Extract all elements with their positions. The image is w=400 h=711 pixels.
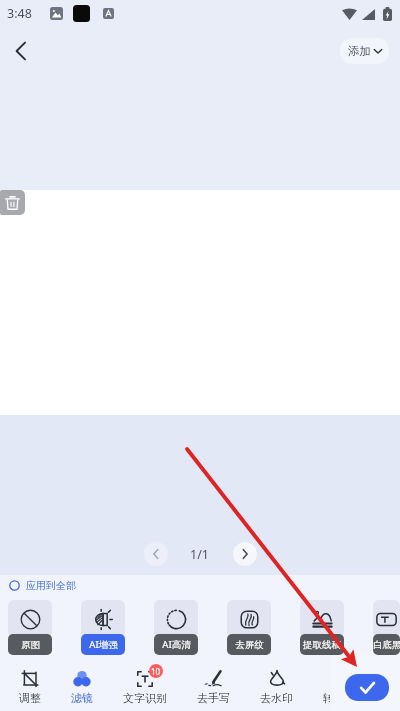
staticText: AI高清 bbox=[162, 638, 191, 651]
button[interactable]: 原图 bbox=[8, 600, 52, 655]
staticText: 提取线稿 bbox=[303, 639, 341, 651]
button[interactable]: 添加 bbox=[340, 38, 389, 64]
button[interactable]: Back bbox=[3, 33, 39, 69]
staticText: 调整 bbox=[19, 691, 41, 705]
button[interactable]: Next page bbox=[233, 542, 257, 566]
button[interactable]: 去屏纹 bbox=[227, 600, 271, 655]
button[interactable]: 白底黑字 bbox=[373, 600, 400, 655]
staticText: 应用到全部 bbox=[26, 579, 76, 592]
staticText: 白底黑字 bbox=[373, 639, 400, 651]
staticText: 去手写 bbox=[197, 691, 230, 705]
button[interactable]: 提取线稿 bbox=[300, 600, 344, 655]
staticText: 1/1 bbox=[190, 546, 209, 563]
button[interactable]: 应用到全部 bbox=[9, 575, 400, 596]
staticText: 去水印 bbox=[260, 691, 293, 705]
staticText: 3:48 bbox=[7, 5, 32, 22]
staticText: 10 bbox=[151, 666, 161, 677]
button[interactable]: Delete bbox=[0, 190, 25, 215]
button[interactable]: 滤镜 bbox=[71, 669, 93, 705]
button[interactable]: Previous page bbox=[144, 542, 168, 566]
staticText: 原图 bbox=[21, 639, 40, 651]
button[interactable]: Confirm bbox=[345, 674, 389, 701]
staticText: AI增强 bbox=[89, 638, 118, 651]
staticText: 添加 bbox=[348, 44, 371, 58]
button[interactable]: 10 bbox=[123, 669, 167, 705]
staticText: 转word bbox=[323, 690, 330, 705]
button[interactable]: 转word bbox=[323, 668, 330, 705]
button[interactable]: 去水印 bbox=[260, 669, 293, 705]
button[interactable]: 调整 bbox=[19, 669, 41, 705]
staticText: 滤镜 bbox=[71, 691, 93, 705]
staticText: 去屏纹 bbox=[235, 639, 264, 651]
staticText: 文字识别 bbox=[123, 691, 167, 705]
button[interactable]: AI高清 bbox=[154, 600, 198, 655]
button[interactable]: AI增强 bbox=[81, 600, 125, 655]
button[interactable]: 去手写 bbox=[197, 669, 230, 705]
